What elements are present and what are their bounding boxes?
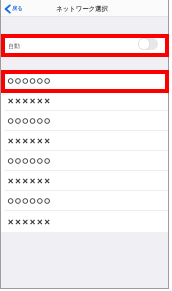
staticText: 戻る bbox=[12, 5, 23, 12]
button[interactable]: Network ○○○○○○ bbox=[0, 111, 169, 131]
staticText: 自動 bbox=[8, 42, 20, 50]
staticText: ネットワーク選択 bbox=[56, 5, 108, 13]
button[interactable]: Network ○○○○○○ bbox=[0, 191, 169, 211]
button[interactable]: Automatic network selection, off bbox=[138, 38, 158, 50]
button[interactable]: Network ×××××× bbox=[0, 171, 169, 191]
button[interactable]: Network ×××××× bbox=[0, 91, 169, 111]
button[interactable]: Network ○○○○○○ bbox=[0, 151, 169, 171]
button[interactable]: 自動 bbox=[0, 35, 169, 56]
button[interactable]: Network ×××××× bbox=[0, 131, 169, 151]
button[interactable]: Network ×××××× bbox=[0, 211, 169, 232]
button[interactable]: Network ○○○○○○ bbox=[0, 71, 169, 91]
button[interactable]: 戻る bbox=[0, 0, 28, 17]
